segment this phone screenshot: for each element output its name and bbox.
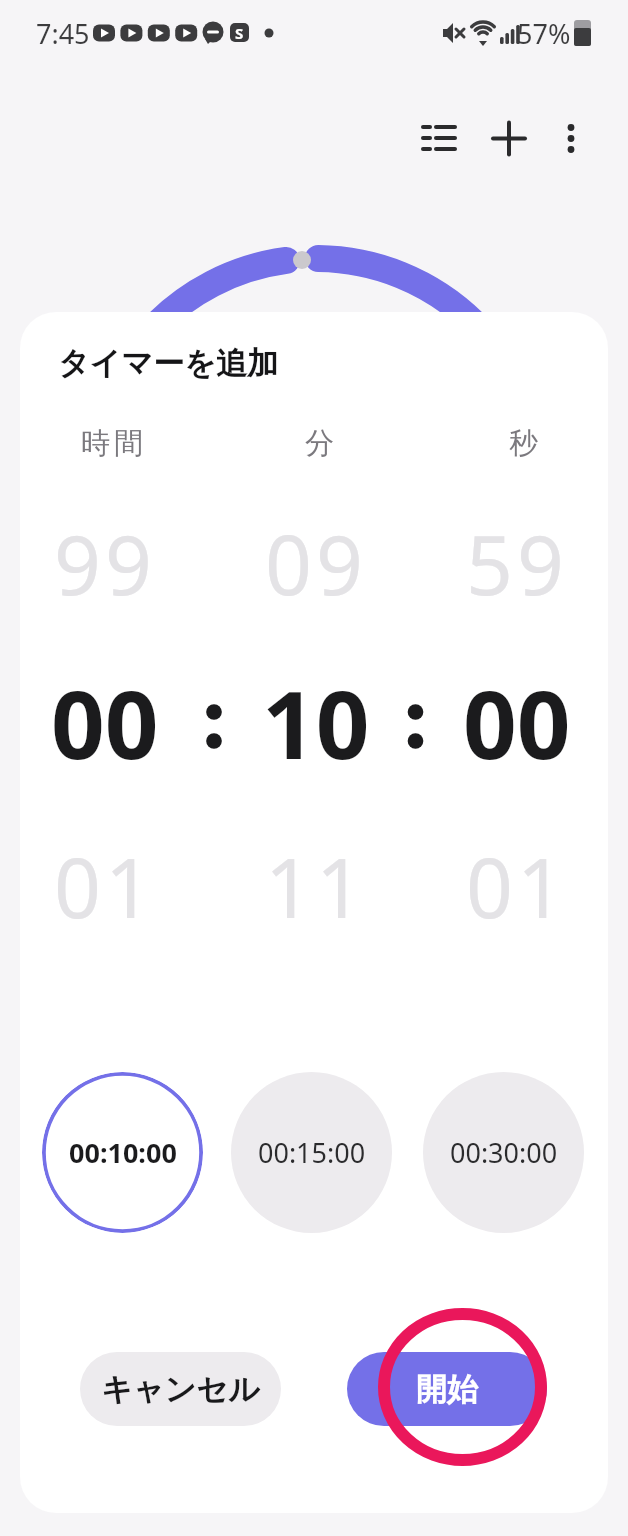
button[interactable] <box>415 120 463 160</box>
staticText: 11 <box>265 830 367 940</box>
button[interactable]: 00:30:00 <box>423 1072 584 1233</box>
button[interactable]: 00:15:00 <box>231 1072 392 1233</box>
staticText: 秒 <box>507 425 540 462</box>
button[interactable]: 開始 <box>347 1352 547 1426</box>
staticText: 10 <box>262 659 370 787</box>
staticText: 99 <box>54 507 156 617</box>
staticText: 00 <box>463 659 571 787</box>
staticText: 00:30:00 <box>450 1134 558 1171</box>
staticText: 59 <box>466 507 568 617</box>
button[interactable]: 00:10:00 <box>42 1072 203 1233</box>
staticText: 開始 <box>416 1370 478 1409</box>
staticText: 00:15:00 <box>258 1134 366 1171</box>
staticText: 時間 <box>79 425 145 462</box>
staticText: 01 <box>466 830 568 940</box>
staticText: 00:10:00 <box>69 1134 177 1171</box>
button[interactable]: キャンセル <box>80 1352 281 1426</box>
staticText: 09 <box>265 507 367 617</box>
button[interactable] <box>485 120 533 160</box>
staticText: タイマーを追加 <box>58 344 278 383</box>
staticText: 分 <box>303 425 336 462</box>
staticText: 57% <box>517 15 571 52</box>
staticText: 01 <box>54 830 156 940</box>
staticText: 00 <box>51 659 159 787</box>
button[interactable] <box>553 120 593 160</box>
staticText: 7:45 <box>36 15 90 52</box>
staticText: キャンセル <box>101 1370 260 1409</box>
staticText: S <box>235 23 244 43</box>
